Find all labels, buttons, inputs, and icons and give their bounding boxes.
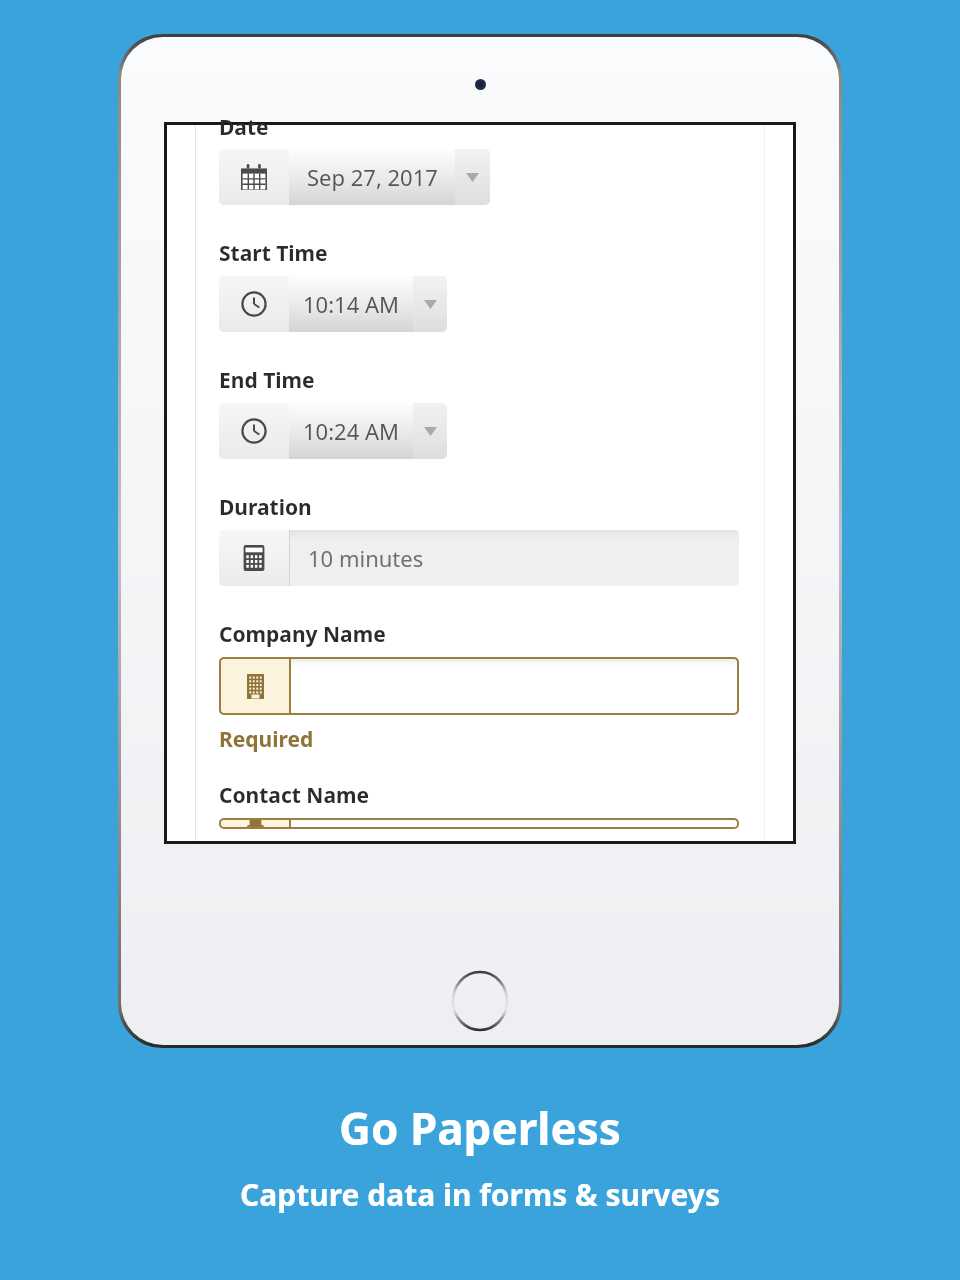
staticText: Sep 27, 2017 [307, 162, 438, 192]
staticText: Capture data in forms & surveys [240, 1174, 720, 1215]
staticText: 10:24 AM [303, 416, 399, 446]
staticText: Date [219, 113, 269, 142]
staticText: Go Paperless [339, 1098, 621, 1158]
staticText: Required [219, 725, 314, 754]
button[interactable]: 10:14 AM [219, 276, 447, 332]
staticText: Company Name [219, 620, 386, 649]
staticText: End Time [219, 366, 315, 395]
button[interactable]: Home [453, 972, 507, 1030]
button[interactable]: Sep 27, 2017 [219, 149, 490, 205]
staticText: Contact Name [219, 781, 370, 810]
staticText: 10 minutes [308, 543, 424, 573]
staticText: Duration [219, 493, 312, 522]
button[interactable] [221, 820, 737, 827]
staticText: 10:14 AM [303, 289, 399, 319]
button[interactable]: 10:24 AM [219, 403, 447, 459]
button[interactable] [221, 659, 737, 713]
button[interactable]: 10 minutes [219, 530, 739, 586]
staticText: Start Time [219, 239, 328, 268]
